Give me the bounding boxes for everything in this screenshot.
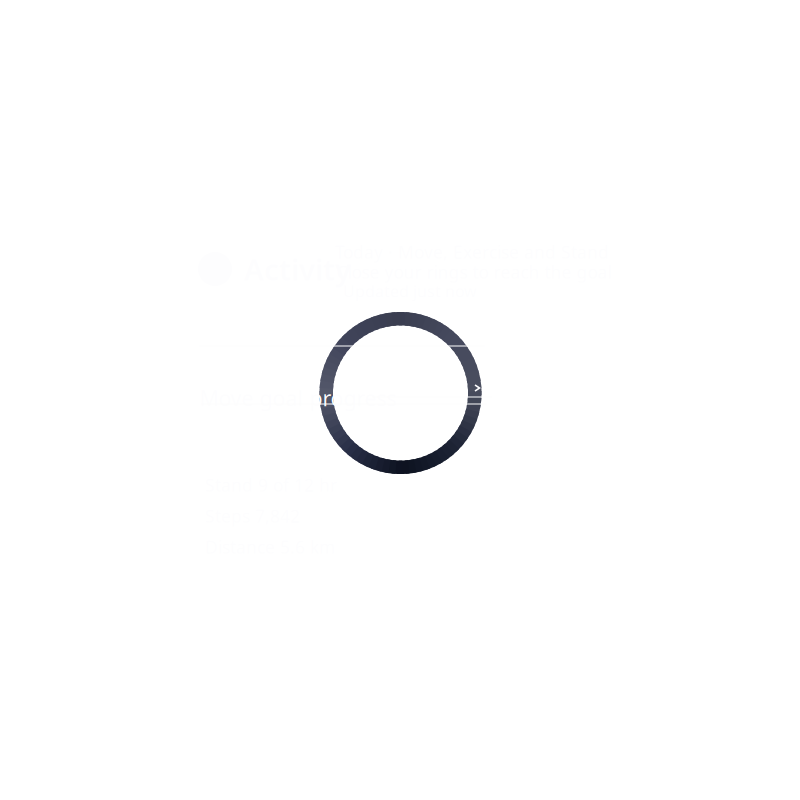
button[interactable]: Move goal progress: [199, 378, 482, 418]
staticText: Move goal progress: [199, 384, 396, 412]
